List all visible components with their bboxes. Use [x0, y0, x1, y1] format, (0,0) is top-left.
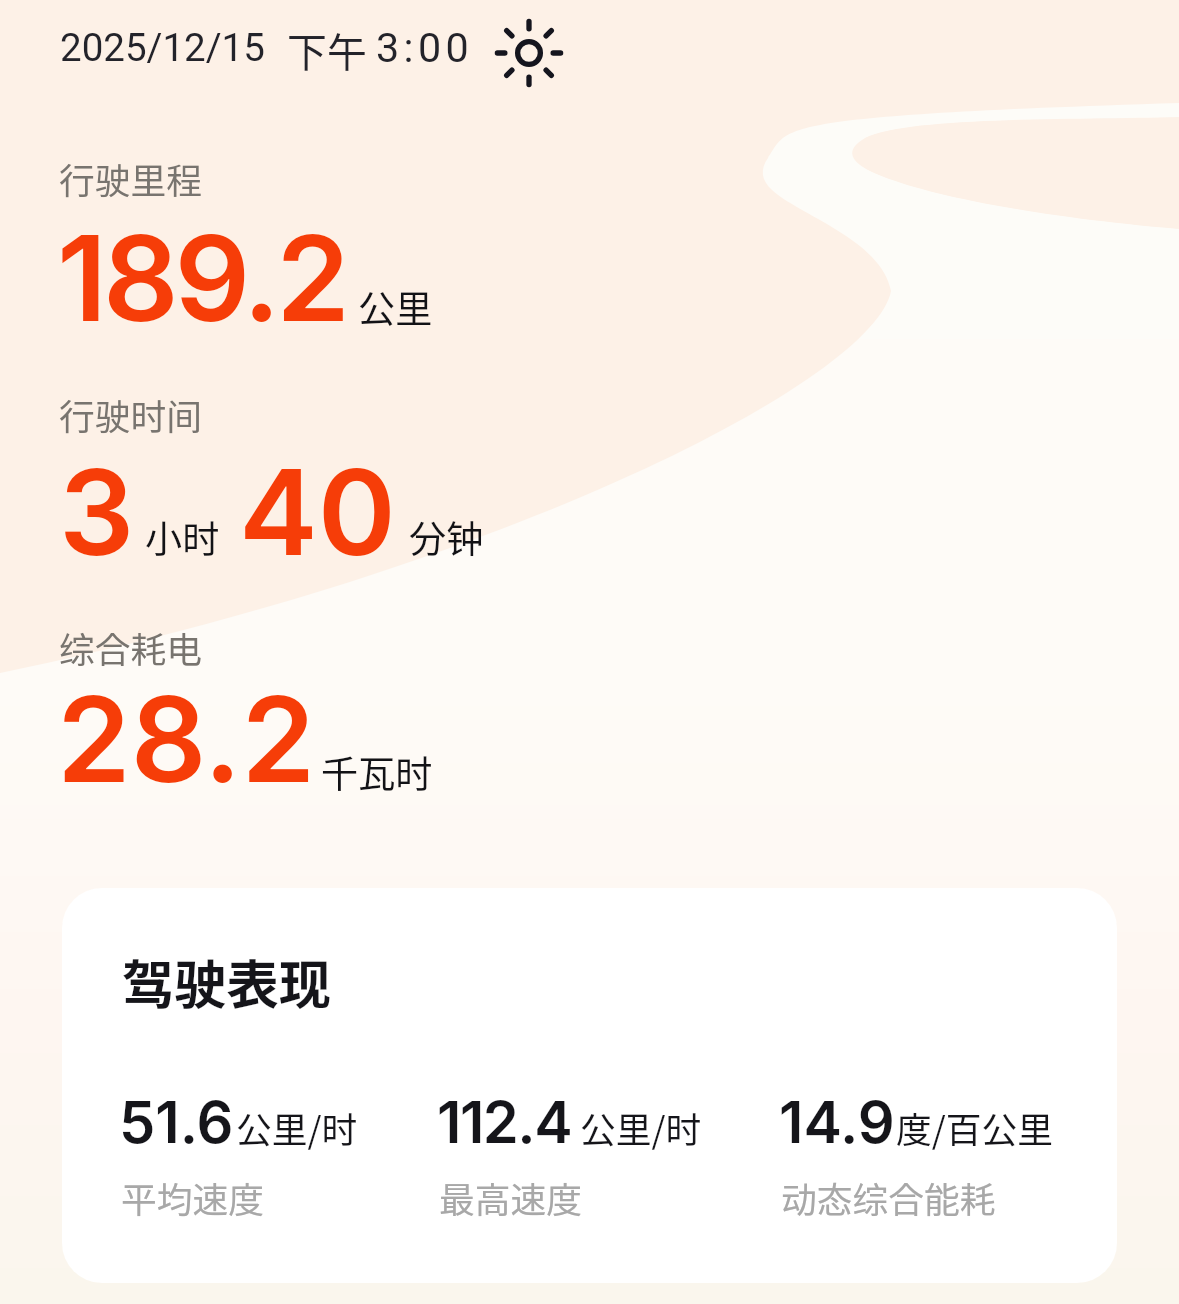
staticText: 公里/时	[236, 1102, 358, 1154]
staticText: 公里	[358, 280, 433, 334]
staticText: 28.2	[57, 667, 316, 810]
staticText: 3	[59, 440, 135, 583]
other: Trip summary	[0, 0, 1179, 1304]
staticText: 14.9	[779, 1087, 895, 1157]
staticText: 公里/时	[580, 1102, 702, 1154]
staticText: 40	[239, 440, 396, 583]
staticText: 51.6	[119, 1087, 234, 1157]
staticText: 平均速度	[121, 1172, 264, 1224]
staticText: 千瓦时	[321, 745, 433, 799]
staticText: 动态综合能耗	[781, 1172, 996, 1224]
staticText: 度/百公里	[896, 1102, 1054, 1154]
staticText: 行驶时间	[59, 389, 202, 441]
staticText: 112.4	[437, 1087, 572, 1157]
staticText: 小时	[145, 510, 220, 564]
button[interactable]: 驾驶表现	[62, 888, 1117, 1283]
staticText: 2025/12/15	[60, 25, 265, 70]
staticText: 下午	[287, 21, 367, 79]
staticText: 分钟	[409, 510, 484, 564]
staticText: 最高速度	[439, 1172, 582, 1224]
button[interactable]: Weather sunny	[495, 19, 563, 87]
staticText: 行驶里程	[59, 153, 202, 205]
staticText: 3:00	[376, 24, 474, 72]
staticText: 驾驶表现	[122, 943, 331, 1019]
staticText: 189.2	[57, 206, 346, 349]
staticText: 综合耗电	[59, 622, 202, 674]
